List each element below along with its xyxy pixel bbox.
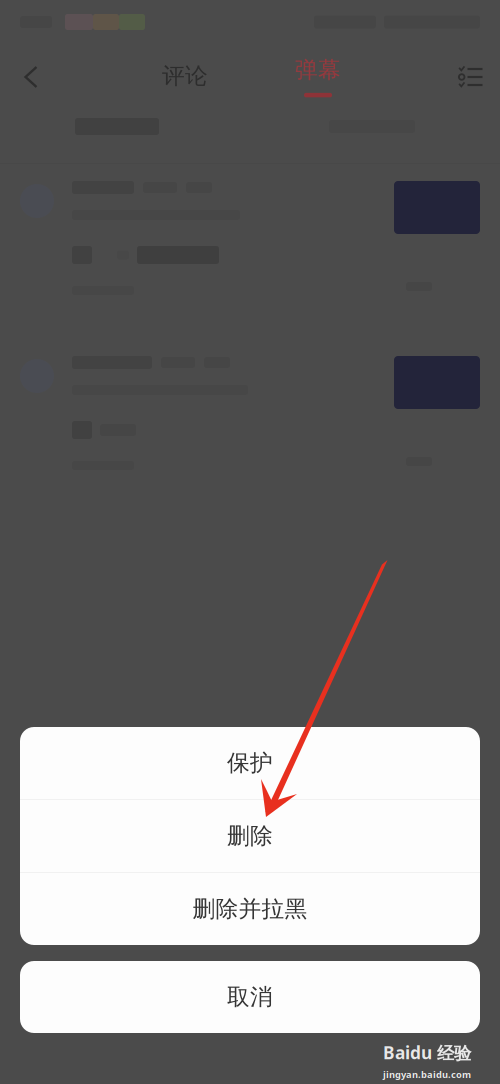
staticText: Baidu 经验 — [383, 1041, 471, 1064]
button[interactable]: 保护 — [20, 727, 480, 799]
button[interactable]: 取消 — [20, 961, 480, 1033]
button[interactable]: 删除 — [20, 800, 480, 872]
button[interactable]: 删除并拉黑 — [20, 873, 480, 945]
staticText: 删除并拉黑 — [192, 895, 307, 923]
button[interactable]: 评论 — [140, 53, 230, 99]
button[interactable]: Back — [8, 54, 54, 100]
button[interactable]: Sort comments — [448, 54, 494, 100]
staticText: 取消 — [227, 983, 273, 1011]
staticText: 评论 — [162, 62, 208, 90]
staticText: 删除 — [227, 822, 273, 850]
button[interactable]: 弹幕 — [273, 56, 363, 104]
staticText: jingyan.baidu.com — [383, 1068, 471, 1080]
staticText: 弹幕 — [295, 56, 341, 84]
staticText: 保护 — [227, 749, 273, 777]
